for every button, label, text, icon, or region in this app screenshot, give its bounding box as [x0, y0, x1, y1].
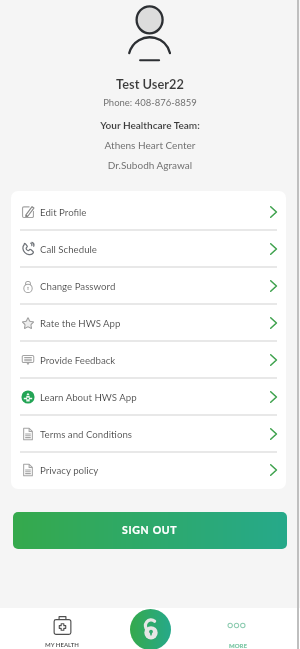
button[interactable]: Change Password	[11, 268, 286, 305]
staticText: MY HEALTH	[45, 641, 79, 648]
staticText: Privacy policy	[40, 464, 99, 476]
button[interactable]: MORE	[208, 608, 268, 649]
button[interactable]: MY HEALTH	[32, 608, 92, 649]
staticText: Your Healthcare Team:	[0, 119, 300, 131]
staticText: Call Schedule	[40, 243, 97, 255]
button[interactable]: Call Schedule	[11, 231, 286, 268]
staticText: Provide Feedback	[40, 354, 116, 366]
staticText: SIGN OUT	[122, 524, 178, 537]
staticText: MORE	[229, 642, 247, 649]
staticText: Athens Heart Center	[0, 139, 300, 151]
button[interactable]: Terms and Conditions	[11, 416, 286, 453]
staticText: Edit Profile	[40, 206, 87, 218]
button[interactable]: Edit Profile	[11, 194, 286, 231]
button[interactable]: Privacy policy	[11, 453, 286, 489]
button[interactable]: Provide Feedback	[11, 342, 286, 379]
button[interactable]: Rate the HWS App	[11, 305, 286, 342]
staticText: Phone: 408-876-8859	[0, 97, 300, 108]
button[interactable]: Learn About HWS App	[11, 379, 286, 416]
staticText: Test User22	[0, 76, 300, 91]
staticText: Learn About HWS App	[40, 391, 137, 403]
staticText: Change Password	[40, 280, 116, 292]
button[interactable]: Security	[130, 609, 171, 649]
staticText: Dr.Subodh Agrawal	[0, 159, 300, 171]
button[interactable]: SIGN OUT	[13, 512, 287, 549]
staticText: Rate the HWS App	[40, 317, 121, 329]
staticText: Terms and Conditions	[40, 428, 133, 440]
